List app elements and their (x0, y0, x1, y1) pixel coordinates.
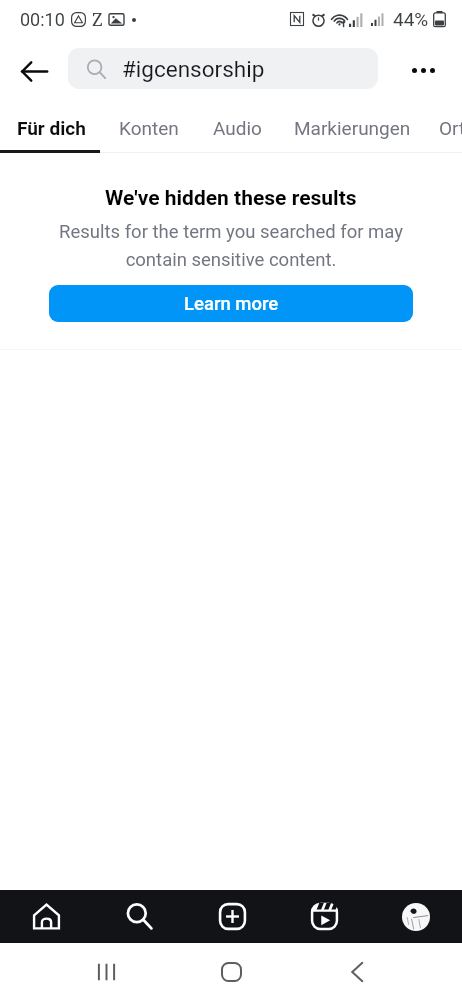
button[interactable]: Audio (196, 102, 278, 153)
staticText: Audio (213, 117, 262, 139)
button[interactable]: More options (395, 42, 451, 98)
staticText: 00:10 (20, 9, 65, 30)
button[interactable]: Reels (278, 890, 370, 943)
button[interactable]: Orte (426, 102, 462, 153)
button[interactable]: #igcensorship (68, 48, 378, 89)
staticText: Learn more (184, 293, 279, 315)
button[interactable]: Für dich (0, 102, 102, 153)
button[interactable]: Recents (86, 952, 126, 992)
button[interactable]: Learn more (49, 285, 413, 322)
button[interactable]: Home (0, 890, 93, 943)
staticText: Z (92, 7, 103, 32)
staticText: Markierungen (294, 117, 411, 139)
button[interactable]: Back (337, 952, 377, 992)
staticText: We've hidden these results (105, 186, 357, 211)
button[interactable]: Konten (102, 102, 196, 153)
staticText: Orte (439, 117, 462, 139)
button[interactable]: Create (186, 890, 278, 943)
button[interactable]: Home (211, 952, 251, 992)
button[interactable]: Markierungen (278, 102, 426, 153)
staticText: Konten (119, 117, 179, 139)
button[interactable]: Profile (370, 890, 462, 943)
staticText: Results for the term you searched for ma… (46, 221, 416, 271)
staticText: 44% (393, 8, 429, 30)
staticText: #igcensorship (122, 56, 265, 82)
button[interactable]: Back (6, 43, 62, 99)
staticText: Für dich (17, 117, 86, 139)
button[interactable]: Search (93, 890, 186, 943)
